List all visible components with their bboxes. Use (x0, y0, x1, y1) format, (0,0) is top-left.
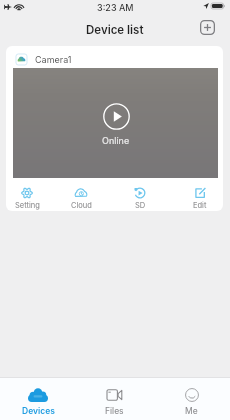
button[interactable]: Setting (6, 178, 54, 211)
staticText: Files (105, 406, 124, 416)
staticText: Me (185, 406, 198, 416)
button[interactable]: SD (113, 178, 167, 211)
staticText: Cloud (71, 201, 92, 210)
staticText: Edit (193, 201, 207, 210)
staticText: Devices (22, 406, 55, 416)
staticText: SD (135, 201, 146, 210)
button[interactable]: Edit (173, 178, 223, 211)
button[interactable]: Online (13, 68, 218, 178)
button[interactable]: Cloud (54, 178, 108, 211)
button[interactable]: Add device (199, 19, 216, 36)
button[interactable]: Devices (0, 378, 76, 420)
staticText: Device list (86, 23, 144, 37)
button[interactable]: Files (76, 378, 153, 420)
staticText: Camera1 (35, 54, 72, 65)
staticText: Setting (15, 201, 40, 210)
button[interactable]: Me (153, 378, 230, 420)
staticText: Online (102, 135, 130, 146)
staticText: 3:23 AM (97, 2, 134, 13)
